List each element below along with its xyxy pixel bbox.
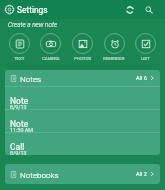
button[interactable]: Settings — [5, 5, 14, 14]
button[interactable]: Call — [5, 133, 160, 155]
button[interactable]: PHOTOS — [72, 33, 93, 61]
button[interactable]: TEXT — [9, 33, 30, 61]
button[interactable]: Search — [141, 2, 157, 18]
staticText: Note — [10, 119, 29, 129]
staticText: Create a new note — [8, 21, 58, 29]
button[interactable]: Notebooks — [5, 164, 160, 184]
staticText: PHOTOS — [74, 56, 92, 61]
button[interactable]: REMINDER — [103, 33, 125, 61]
staticText: REMINDER — [103, 56, 125, 61]
button[interactable]: LIST — [135, 33, 156, 61]
staticText: LIST — [141, 56, 150, 61]
staticText: Call — [10, 142, 25, 152]
staticText: All 6 — [136, 75, 147, 82]
staticText: 8/9/13 — [10, 150, 27, 155]
staticText: Settings — [17, 5, 48, 15]
staticText: TEXT — [14, 56, 25, 61]
staticText: All 2 — [136, 171, 147, 178]
button[interactable]: CAMERA — [40, 33, 61, 61]
button[interactable]: Sync — [122, 2, 138, 18]
staticText: Note — [10, 96, 29, 106]
button[interactable]: Notes — [5, 70, 160, 86]
staticText: CAMERA — [42, 56, 60, 61]
staticText: Notes — [20, 74, 42, 83]
button[interactable]: Note — [5, 87, 160, 109]
button[interactable]: Note — [5, 110, 160, 132]
staticText: Notebooks — [20, 170, 59, 179]
staticText: 8/9/13 — [10, 104, 27, 110]
staticText: 11:50 AM — [10, 127, 33, 133]
